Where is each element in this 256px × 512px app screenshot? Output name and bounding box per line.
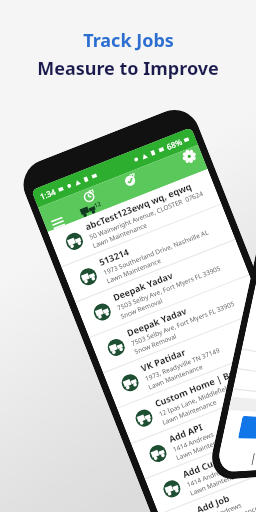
staticText: 68% — [165, 136, 184, 152]
button[interactable]: History — [81, 187, 98, 204]
button[interactable]: Deepak Yadav — [75, 240, 249, 337]
button[interactable]: Settings — [179, 147, 199, 166]
button[interactable]: 513214 — [62, 204, 235, 302]
staticText: 12 Ipas Lane, Middlefield — [158, 382, 232, 418]
button[interactable]: VK Patidar — [103, 310, 256, 408]
staticText: Lawn Maintenance — [161, 397, 218, 427]
button[interactable] — [238, 416, 256, 439]
button[interactable]: Add Customer — [145, 416, 256, 512]
staticText: 1414 Andrews — [185, 465, 230, 489]
staticText: Track Jobs — [83, 28, 174, 53]
staticText: Deepak Yadav — [125, 304, 189, 338]
staticText: Lawn Maintenance — [175, 433, 232, 462]
staticText: Add Job — [195, 491, 232, 512]
staticText: 1973 Southerland Drive, Nashville AL 371… — [102, 221, 225, 277]
staticText: Lawn Maintenance — [105, 256, 162, 285]
staticText: Add API — [167, 420, 205, 445]
staticText: | ... — [249, 449, 256, 466]
button[interactable]: Add Job — [159, 452, 256, 512]
staticText: 7503 Selby Ave, Fort Myers FL 33905 — [116, 263, 222, 312]
staticText: 12 — [93, 200, 102, 210]
button[interactable]: Deepak Yadav — [89, 275, 256, 373]
button[interactable]: Menu — [49, 214, 66, 230]
staticText: VK Patidar — [139, 345, 187, 374]
staticText: Custom Home | Brand — [153, 361, 250, 409]
staticText: 1414 Andrews — [171, 429, 216, 454]
staticText: Snow Removal — [133, 331, 178, 356]
staticText: 1414 Andrews — [199, 500, 243, 512]
staticText: Add Customer — [181, 445, 245, 480]
staticText: Lawn Maintenance — [147, 362, 204, 391]
staticText: 7503 Selby Ave, Fort Myers FL 33905 — [130, 299, 236, 348]
button[interactable]: abcTest123ewq wq, eqwq eqw | abcTest123 — [48, 169, 221, 266]
button[interactable]: Completed — [122, 171, 139, 188]
staticText: Snow Removal — [119, 296, 164, 321]
staticText: Lawn Maintenance — [91, 220, 148, 250]
staticText: Measure to Improve — [37, 56, 219, 81]
button[interactable]: Custom Home | Brand — [117, 346, 256, 443]
staticText: 1:34 — [38, 186, 57, 202]
staticText: 50 Wainwright Avenue, CLOSTER 07624 — [88, 189, 205, 242]
staticText: 27 — [129, 171, 136, 179]
staticText: Lawn Maintenance — [203, 503, 256, 512]
staticText: Lawn Maintenance — [189, 468, 246, 498]
staticText: Deepak Yadav — [111, 268, 175, 303]
staticText: 1973, Readyville TN 37149 — [144, 345, 221, 383]
staticText: 513214 — [97, 245, 130, 268]
button[interactable]: Add API — [131, 381, 256, 479]
staticText: 21 — [88, 187, 96, 195]
staticText: abcTest123ewq wq, eqwq eqw | abcTest123 — [83, 174, 208, 232]
